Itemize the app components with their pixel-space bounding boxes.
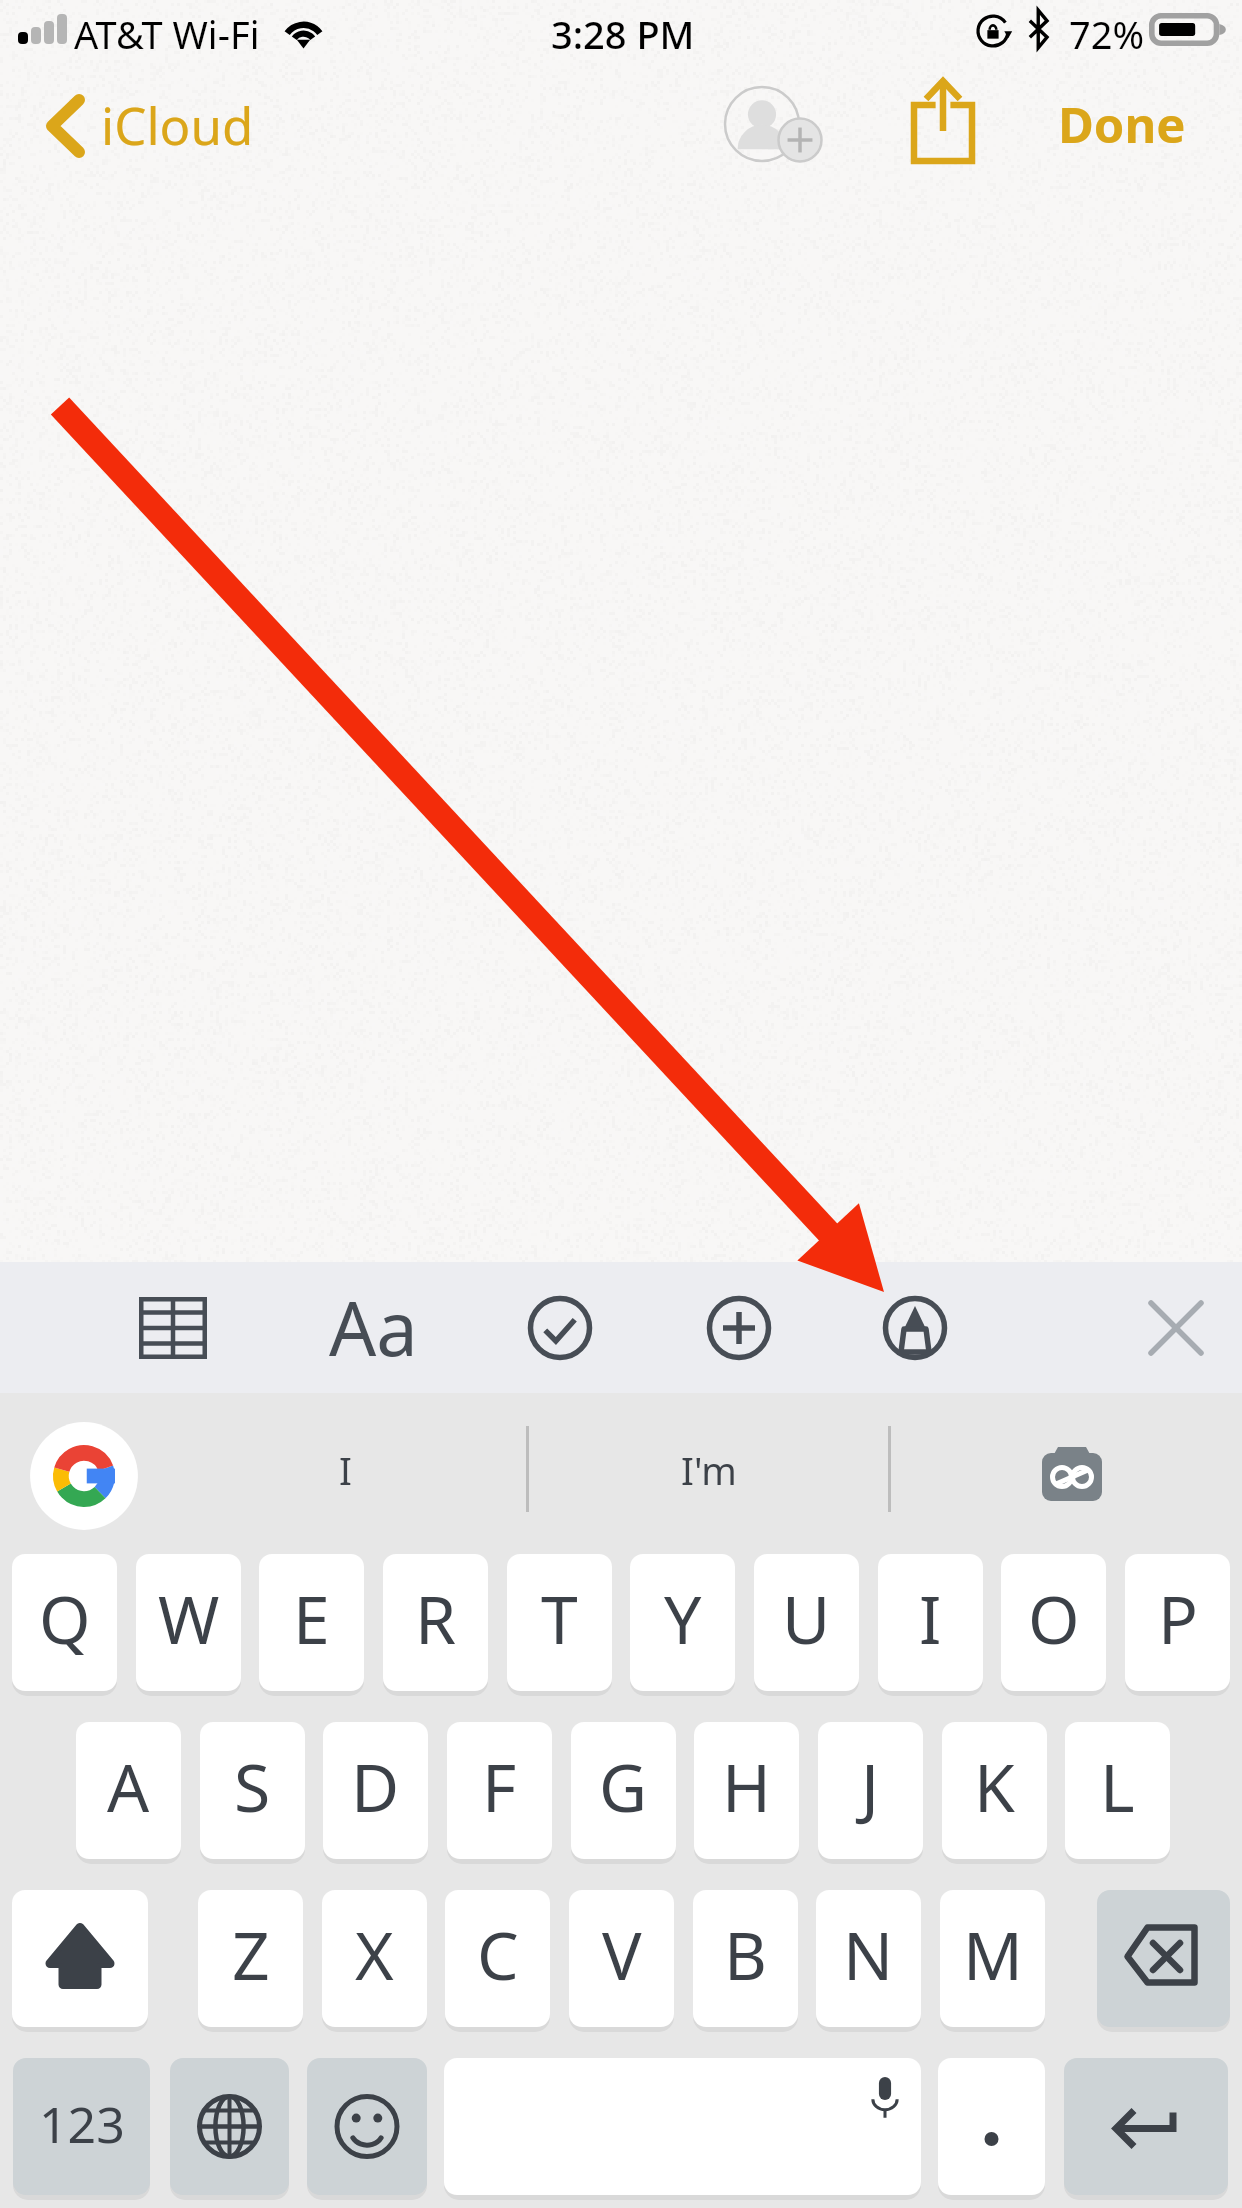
button[interactable]: L <box>1065 1722 1170 1859</box>
staticText: J <box>861 1741 880 1831</box>
button[interactable]: H <box>694 1722 799 1859</box>
staticText: P <box>1158 1573 1198 1663</box>
staticText: Y <box>664 1573 702 1663</box>
staticText: T <box>541 1573 578 1663</box>
staticText: Z <box>232 1909 270 1999</box>
staticText: O <box>1028 1573 1080 1663</box>
button[interactable]: J <box>818 1722 923 1859</box>
button[interactable]: G <box>571 1722 676 1859</box>
button[interactable]: X <box>322 1890 427 2027</box>
staticText: A <box>107 1741 150 1831</box>
staticText: I <box>919 1573 942 1663</box>
button[interactable]: R <box>383 1554 488 1691</box>
button[interactable]: W <box>136 1554 241 1691</box>
staticText: B <box>724 1909 767 1999</box>
staticText: iCloud <box>101 90 254 159</box>
button[interactable]: Checklist <box>510 1278 610 1378</box>
button[interactable]: Done <box>1050 80 1196 172</box>
staticText: F <box>482 1741 517 1831</box>
button[interactable]: D <box>323 1722 428 1859</box>
button[interactable]: Text format <box>313 1277 433 1377</box>
button[interactable]: Camera <box>1036 1438 1108 1508</box>
staticText: 123 <box>39 2090 125 2158</box>
button[interactable]: Share <box>906 72 980 168</box>
staticText: I'm <box>681 1444 737 1496</box>
button[interactable]: Y <box>630 1554 735 1691</box>
button[interactable]: Close <box>1126 1278 1226 1378</box>
button[interactable]: E <box>259 1554 364 1691</box>
staticText: W <box>158 1573 220 1663</box>
button[interactable]: A <box>76 1722 181 1859</box>
staticText: Done <box>1058 91 1186 158</box>
button[interactable]: Space <box>444 2058 921 2195</box>
button[interactable]: S <box>200 1722 305 1859</box>
staticText: K <box>974 1741 1015 1831</box>
staticText: V <box>602 1909 642 1999</box>
button[interactable]: I <box>170 1396 520 1544</box>
staticText: C <box>477 1909 519 1999</box>
staticText: N <box>843 1909 894 1999</box>
button[interactable]: Emoji <box>307 2058 427 2195</box>
staticText: Q <box>39 1573 91 1663</box>
staticText: L <box>1100 1741 1135 1831</box>
button[interactable]: O <box>1001 1554 1106 1691</box>
staticText: U <box>782 1573 831 1663</box>
button[interactable]: 123 <box>13 2058 150 2195</box>
button[interactable]: Table <box>123 1278 223 1378</box>
button[interactable]: Period <box>938 2058 1045 2195</box>
button[interactable]: Enter <box>1064 2058 1228 2195</box>
button[interactable]: F <box>447 1722 552 1859</box>
button[interactable]: I <box>878 1554 983 1691</box>
staticText: D <box>351 1741 400 1831</box>
button[interactable]: U <box>754 1554 859 1691</box>
button[interactable]: Add People <box>718 80 830 168</box>
button[interactable]: Q <box>12 1554 117 1691</box>
staticText: AT&T Wi-Fi <box>74 8 260 60</box>
staticText: E <box>293 1573 330 1663</box>
staticText: 72% <box>1069 8 1145 60</box>
staticText: Aa <box>329 1277 418 1377</box>
staticText: 3:28 PM <box>551 8 695 60</box>
staticText: G <box>599 1741 648 1831</box>
staticText: M <box>963 1909 1023 1999</box>
staticText: X <box>355 1909 394 1999</box>
button[interactable]: C <box>445 1890 550 2027</box>
button[interactable]: Google <box>29 1421 139 1531</box>
button[interactable]: V <box>569 1890 674 2027</box>
button[interactable]: T <box>507 1554 612 1691</box>
staticText: R <box>415 1573 457 1663</box>
button[interactable]: M <box>940 1890 1045 2027</box>
button[interactable]: Draw <box>865 1278 965 1378</box>
button[interactable]: Backspace <box>1097 1890 1230 2027</box>
button[interactable]: iCloud <box>30 80 260 172</box>
button[interactable]: I'm <box>534 1396 884 1544</box>
button[interactable]: K <box>942 1722 1047 1859</box>
staticText: S <box>234 1741 271 1831</box>
button[interactable]: Insert <box>689 1278 789 1378</box>
button[interactable]: B <box>693 1890 798 2027</box>
button[interactable]: Z <box>198 1890 303 2027</box>
button[interactable]: Shift <box>12 1890 148 2027</box>
staticText: H <box>722 1741 771 1831</box>
button[interactable]: N <box>816 1890 921 2027</box>
button[interactable]: Language <box>170 2058 289 2195</box>
staticText: I <box>339 1444 352 1496</box>
button[interactable]: P <box>1125 1554 1230 1691</box>
